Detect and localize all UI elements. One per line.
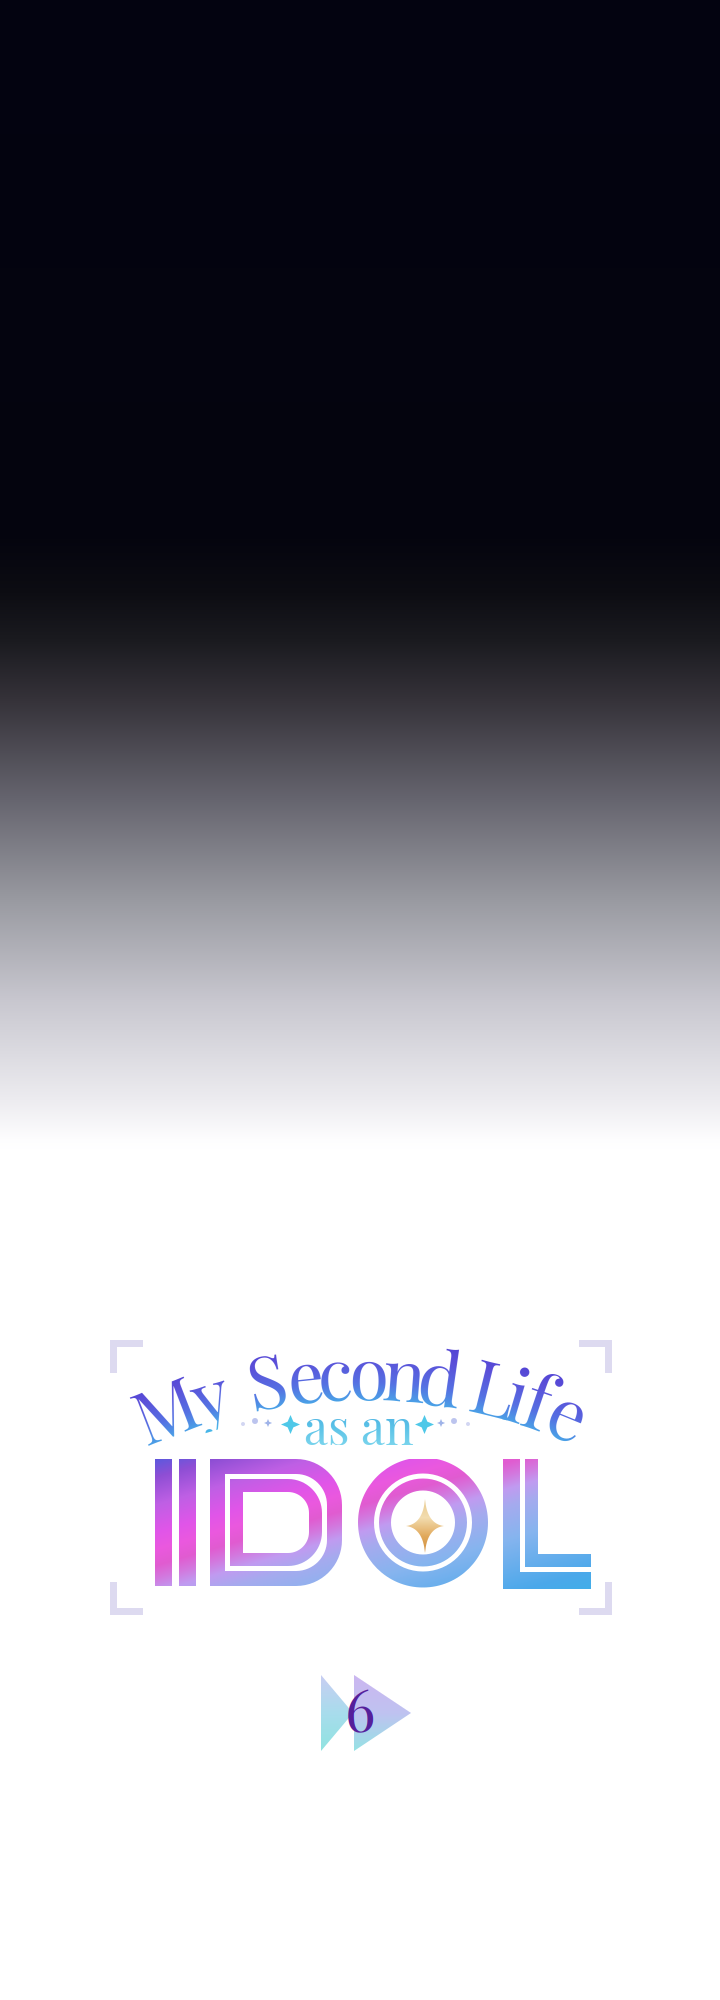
staticText: 6 [345, 1668, 375, 1746]
